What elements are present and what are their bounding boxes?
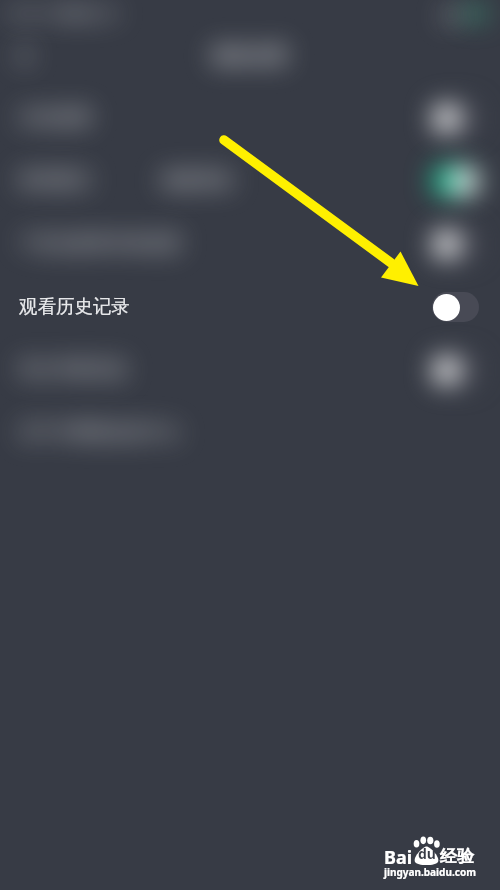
staticText: 隐私设置	[212, 44, 288, 68]
staticText: Bai	[384, 845, 413, 870]
button[interactable]: 观看历史记录	[0, 275, 500, 338]
button[interactable]: Switch off	[432, 292, 479, 322]
staticText: 观看历史记录	[19, 295, 130, 318]
staticText: 10:43 中国移动 5G	[6, 4, 119, 22]
button[interactable]: Switch off	[432, 355, 479, 385]
button[interactable]: Switch off	[432, 103, 479, 133]
staticText: 跟随系统	[161, 169, 233, 192]
staticText: 自动连播	[19, 106, 91, 129]
staticText: 关于与帮助信息中心	[19, 421, 181, 444]
staticText: 经验	[440, 846, 474, 867]
staticText: du	[418, 844, 436, 863]
button[interactable]: 关于与帮助信息中心	[0, 401, 500, 464]
staticText: jingyan.baidu.com	[384, 865, 476, 879]
button[interactable]: 青少年模式设	[0, 338, 500, 401]
button[interactable]: Switch on	[432, 166, 479, 196]
button[interactable]: Switch off	[432, 229, 479, 259]
button[interactable]: 个性化推荐内容设置	[0, 212, 500, 275]
staticText: 夜间模式	[19, 169, 91, 192]
staticText: 青少年模式设	[19, 358, 127, 381]
button[interactable]: 自动连播	[0, 86, 500, 149]
staticText: 个性化推荐内容设置	[19, 232, 181, 255]
button[interactable]: 夜间模式	[0, 149, 500, 212]
